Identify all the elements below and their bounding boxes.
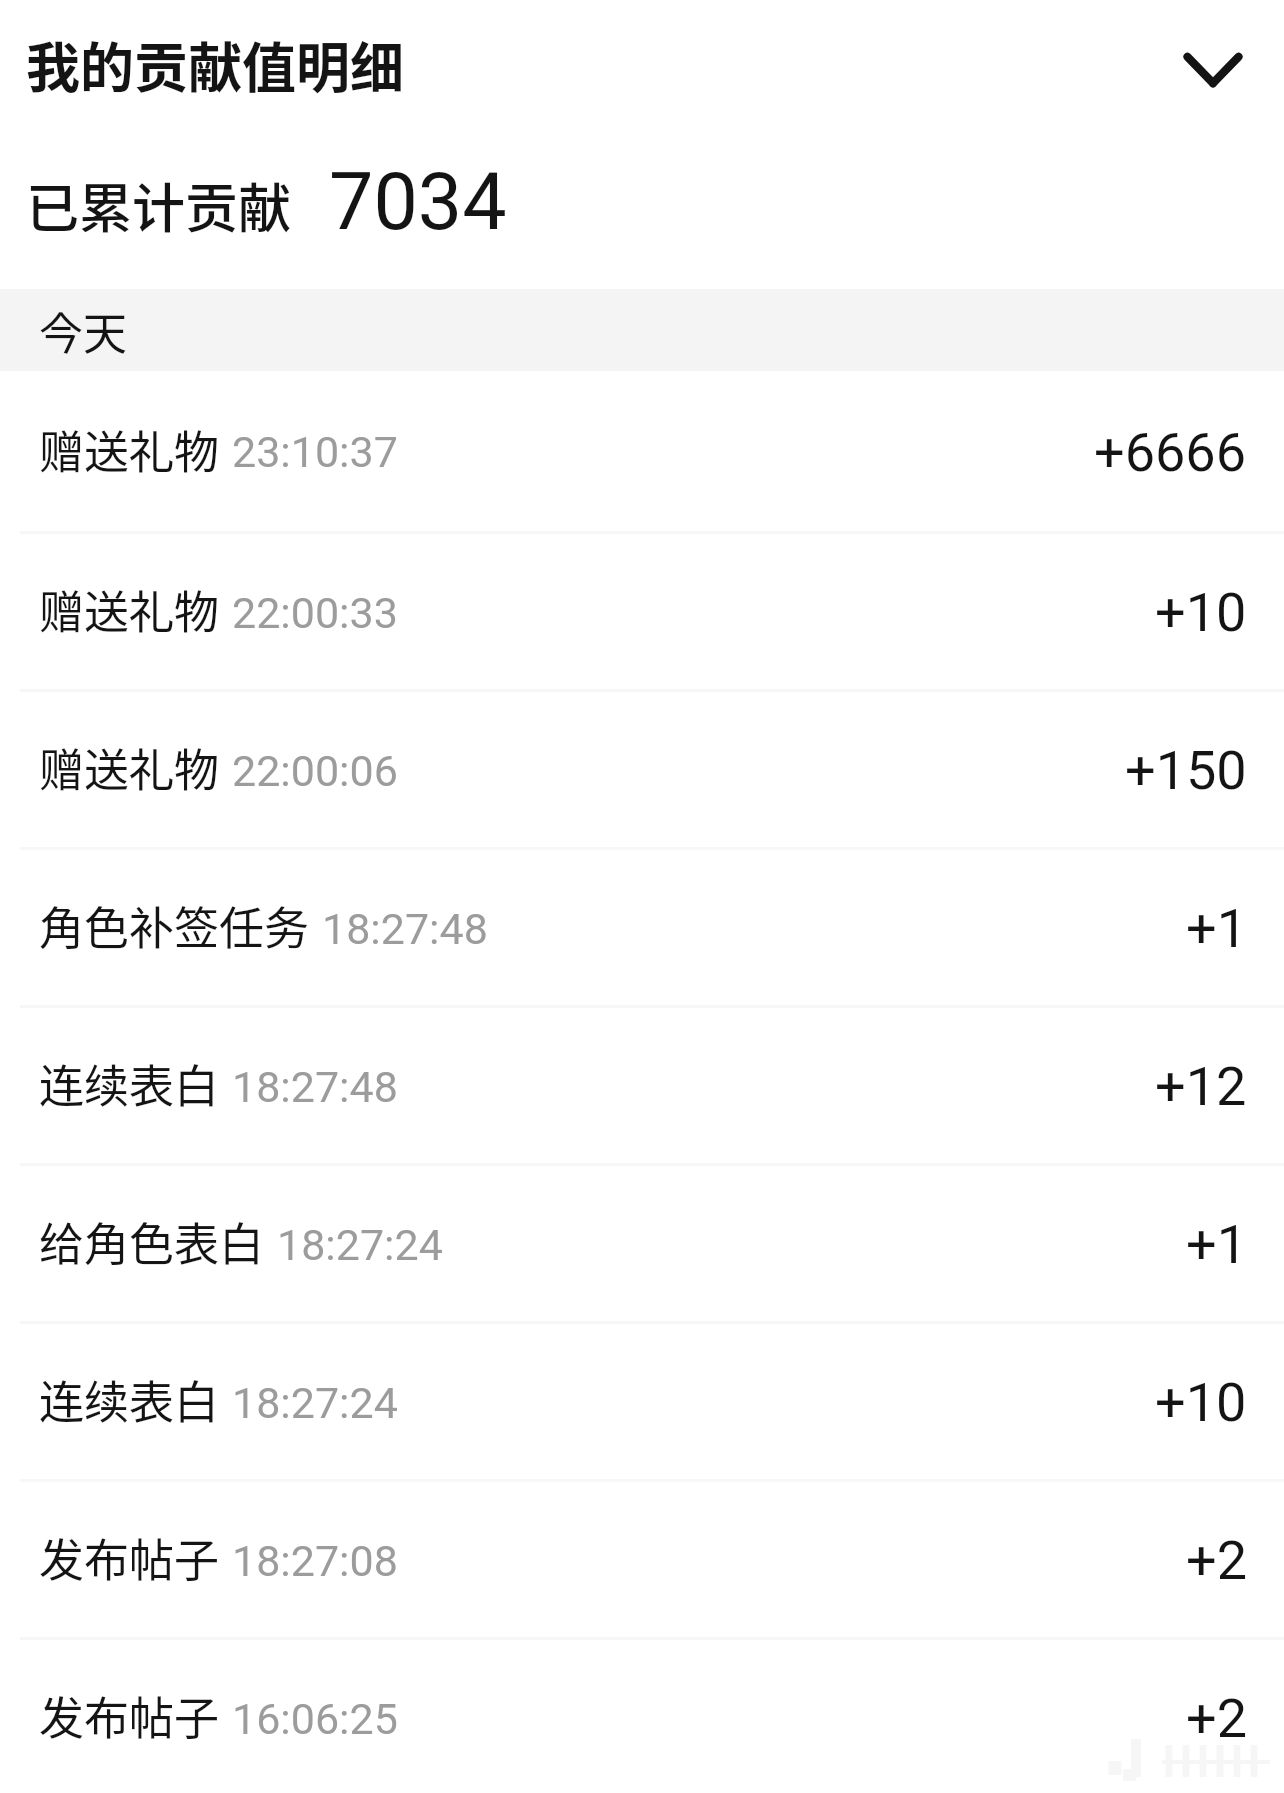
staticText: +6666 bbox=[1094, 421, 1247, 484]
staticText: +1 bbox=[1186, 1213, 1247, 1276]
staticText: +10 bbox=[1155, 581, 1247, 644]
staticText: 连续表白 bbox=[39, 1367, 220, 1432]
staticText: 7034 bbox=[329, 156, 507, 249]
staticText: 角色补签任务 bbox=[39, 893, 310, 958]
staticText: 18:27:24 bbox=[277, 1220, 443, 1270]
button[interactable]: Collapse details bbox=[1158, 15, 1268, 125]
staticText: +1 bbox=[1186, 897, 1247, 960]
staticText: 22:00:06 bbox=[232, 746, 398, 796]
staticText: +2 bbox=[1186, 1687, 1247, 1750]
button[interactable]: 发布帖子 bbox=[0, 1482, 1284, 1637]
staticText: 22:00:33 bbox=[232, 588, 398, 638]
staticText: 今天 bbox=[39, 299, 127, 363]
staticText: 23:10:37 bbox=[232, 427, 398, 477]
staticText: 发布帖子 bbox=[39, 1525, 220, 1590]
staticText: +10 bbox=[1155, 1371, 1247, 1434]
staticText: 给角色表白 bbox=[39, 1209, 265, 1274]
button[interactable]: 发布帖子 bbox=[0, 1640, 1284, 1793]
button[interactable]: 给角色表白 bbox=[0, 1166, 1284, 1321]
button[interactable]: 连续表白 bbox=[0, 1324, 1284, 1479]
staticText: 16:06:25 bbox=[232, 1694, 398, 1744]
staticText: 已累计贡献 bbox=[26, 167, 291, 244]
button[interactable]: 赠送礼物 bbox=[0, 692, 1284, 847]
button[interactable]: 赠送礼物 bbox=[0, 534, 1284, 689]
button[interactable]: 连续表白 bbox=[0, 1008, 1284, 1163]
staticText: 赠送礼物 bbox=[39, 735, 220, 800]
staticText: 连续表白 bbox=[39, 1051, 220, 1116]
staticText: 赠送礼物 bbox=[39, 417, 220, 482]
staticText: 赠送礼物 bbox=[39, 577, 220, 642]
button[interactable]: 赠送礼物 bbox=[0, 371, 1284, 531]
staticText: 18:27:48 bbox=[232, 1062, 398, 1112]
staticText: 我的贡献值明细 bbox=[26, 25, 404, 103]
staticText: +150 bbox=[1125, 739, 1247, 802]
staticText: 发布帖子 bbox=[39, 1683, 220, 1748]
staticText: 18:27:24 bbox=[232, 1378, 398, 1428]
staticText: 18:27:08 bbox=[232, 1536, 398, 1586]
button[interactable]: 角色补签任务 bbox=[0, 850, 1284, 1005]
staticText: +2 bbox=[1186, 1529, 1247, 1592]
staticText: +12 bbox=[1155, 1055, 1247, 1118]
staticText: 18:27:48 bbox=[322, 904, 488, 954]
